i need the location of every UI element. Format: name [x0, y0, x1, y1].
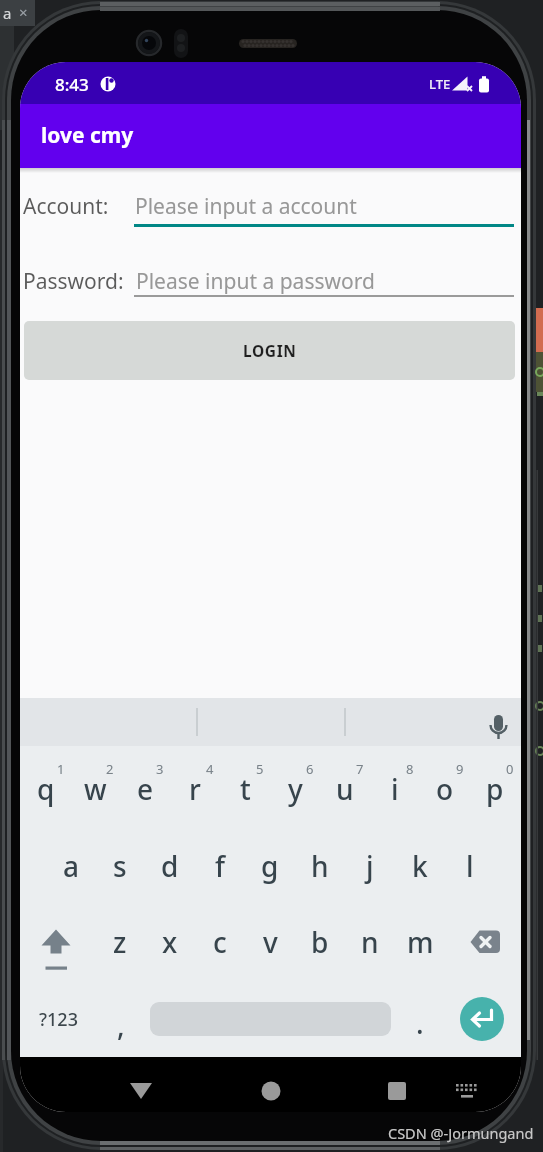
staticText: ×	[19, 2, 28, 22]
staticText: s	[113, 847, 127, 885]
staticText: m	[407, 923, 434, 961]
staticText: p	[486, 770, 504, 808]
staticText: a	[3, 3, 12, 23]
staticText: r	[189, 770, 201, 808]
staticText: ?123	[39, 1007, 78, 1032]
staticText: .	[416, 1004, 424, 1042]
staticText: q	[37, 770, 55, 808]
staticText: j	[366, 847, 374, 885]
staticText: 5	[256, 760, 264, 778]
staticText: Please input a password	[136, 267, 375, 296]
staticText: 4	[206, 760, 214, 778]
button[interactable]: t	[221, 765, 269, 813]
staticText: 2	[106, 760, 114, 778]
staticText: i	[391, 770, 399, 808]
button[interactable]	[445, 1071, 485, 1111]
button[interactable]: u	[321, 765, 369, 813]
staticText: 6	[306, 760, 314, 778]
button[interactable]	[460, 997, 504, 1041]
button[interactable]: g	[246, 842, 294, 890]
button[interactable]	[14, 0, 34, 24]
button[interactable]: v	[246, 918, 294, 966]
staticText: Password:	[23, 267, 124, 296]
staticText: CSDN @-Jormungand	[388, 1123, 534, 1143]
button[interactable]: k	[396, 842, 444, 890]
button[interactable]: i	[371, 765, 419, 813]
staticText: 9	[456, 760, 464, 778]
button[interactable]: x	[146, 918, 194, 966]
button[interactable]	[34, 920, 78, 970]
staticText: a	[63, 847, 80, 885]
button[interactable]	[464, 920, 508, 964]
button[interactable]: Please input a password	[135, 263, 517, 299]
button[interactable]	[251, 1071, 291, 1111]
button[interactable]	[33, 997, 83, 1041]
button[interactable]	[377, 1071, 417, 1111]
button[interactable]: c	[196, 918, 244, 966]
button[interactable]	[478, 702, 518, 742]
staticText: e	[137, 770, 154, 808]
staticText: o	[436, 770, 454, 808]
button[interactable]: w	[71, 765, 119, 813]
button[interactable]: y	[271, 765, 319, 813]
button[interactable]: s	[96, 842, 144, 890]
staticText: 7	[356, 760, 364, 778]
button[interactable]: q	[22, 765, 70, 813]
staticText: x	[162, 923, 178, 961]
staticText: 1	[57, 760, 65, 778]
staticText: 3	[156, 760, 164, 778]
staticText: h	[311, 847, 329, 885]
staticText: f	[215, 847, 225, 885]
staticText: Please input a account	[135, 192, 357, 221]
staticText: ,	[117, 1006, 125, 1044]
staticText: g	[261, 847, 279, 885]
staticText: n	[361, 923, 379, 961]
button[interactable]: r	[171, 765, 219, 813]
staticText: y	[288, 770, 303, 808]
staticText: LTE	[429, 75, 451, 93]
staticText: c	[213, 923, 227, 961]
staticText: z	[113, 923, 127, 961]
staticText: l	[466, 847, 474, 885]
button[interactable]: LOGIN	[24, 321, 515, 380]
button[interactable]: p	[471, 765, 519, 813]
button[interactable]: n	[346, 918, 394, 966]
staticText: k	[412, 847, 428, 885]
staticText: love cmy	[41, 121, 134, 150]
staticText: t	[240, 770, 251, 808]
staticText: 0	[506, 760, 514, 778]
button[interactable]: e	[121, 765, 169, 813]
button[interactable]: l	[446, 842, 494, 890]
button[interactable]: h	[296, 842, 344, 890]
staticText: b	[311, 923, 329, 961]
button[interactable]: a	[47, 842, 95, 890]
staticText: LOGIN	[243, 340, 297, 361]
staticText: u	[336, 770, 354, 808]
staticText: Account:	[23, 192, 109, 221]
staticText: 8	[406, 760, 414, 778]
button[interactable]: z	[96, 918, 144, 966]
button[interactable]: b	[296, 918, 344, 966]
button[interactable]	[400, 1003, 440, 1043]
button[interactable]	[101, 999, 141, 1039]
staticText: v	[263, 923, 278, 961]
button[interactable]: Please input a account	[134, 188, 516, 224]
button[interactable]: j	[346, 842, 394, 890]
button[interactable]	[121, 1071, 161, 1111]
button[interactable]: d	[146, 842, 194, 890]
button[interactable]: o	[421, 765, 469, 813]
staticText: d	[161, 847, 179, 885]
staticText: 8:43	[55, 73, 89, 96]
staticText: w	[84, 770, 107, 808]
button[interactable]: f	[196, 842, 244, 890]
button[interactable]: m	[396, 918, 444, 966]
